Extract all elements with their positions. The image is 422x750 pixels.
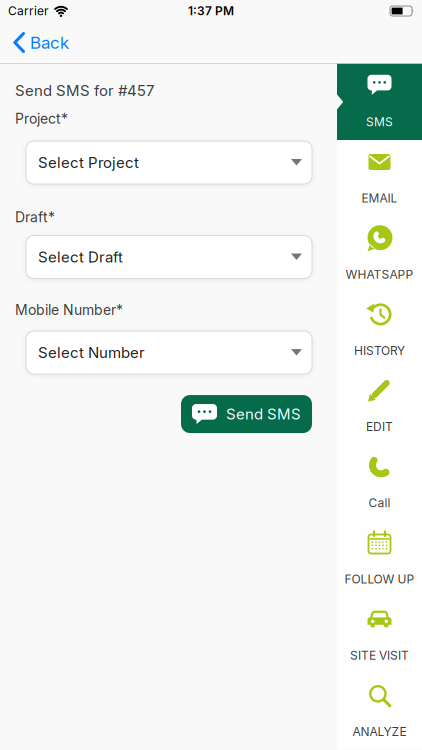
button[interactable]: FOLLOW UP <box>337 521 422 597</box>
staticText: Send SMS <box>226 405 301 423</box>
staticText: SITE VISIT <box>350 648 409 662</box>
staticText: EMAIL <box>361 191 397 205</box>
button[interactable]: SITE VISIT <box>337 597 422 673</box>
staticText: Draft* <box>15 209 55 225</box>
button[interactable]: EMAIL <box>337 140 422 216</box>
button[interactable]: Back <box>0 32 69 53</box>
staticText: Back <box>30 32 69 53</box>
button[interactable]: HISTORY <box>337 292 422 369</box>
staticText: Send SMS for #457 <box>15 82 154 99</box>
button[interactable]: Select Draft <box>26 235 312 278</box>
staticText: Carrier <box>8 4 49 18</box>
staticText: Select Draft <box>38 248 123 266</box>
staticText: Mobile Number* <box>15 301 123 318</box>
button[interactable]: SMS <box>337 64 422 140</box>
staticText: WHATSAPP <box>345 267 413 281</box>
staticText: Select Number <box>38 344 145 361</box>
staticText: 1:37 PM <box>188 4 234 18</box>
staticText: EDIT <box>366 420 393 434</box>
staticText: SMS <box>366 115 393 129</box>
staticText: Select Project <box>38 154 139 171</box>
staticText: FOLLOW UP <box>344 572 414 586</box>
button[interactable]: EDIT <box>337 369 422 445</box>
button[interactable]: Select Project <box>26 141 312 184</box>
button[interactable]: Call <box>337 445 422 521</box>
button[interactable]: WHATSAPP <box>337 216 422 292</box>
staticText: HISTORY <box>354 343 405 358</box>
staticText: ANALYZE <box>352 724 406 739</box>
button[interactable]: Select Number <box>26 331 312 374</box>
staticText: Project* <box>15 110 68 127</box>
staticText: Call <box>368 496 390 510</box>
button[interactable]: Send SMS <box>181 395 312 433</box>
button[interactable]: ANALYZE <box>337 673 422 750</box>
